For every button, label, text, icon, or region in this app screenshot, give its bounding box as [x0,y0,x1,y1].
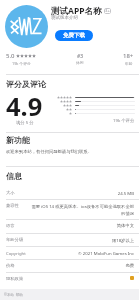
other: Privacy policy [130,276,134,280]
staticText: 19k 个评分 [12,61,31,66]
staticText: 19k 个评分 [113,117,135,123]
staticText: 测试版本介绍 [51,15,78,21]
staticText: 简体中文 [30,223,134,228]
staticText: 评分及评论 [6,79,46,89]
staticText: 24.5 MB [30,190,134,196]
staticText: 欢迎来到本站，有任何问题都请与我们联系。 [6,149,92,154]
staticText: 新功能 [6,135,30,145]
staticText: Copyright [6,250,30,256]
staticText: 年龄 [125,61,133,66]
button[interactable]: 隐私政策 [0,273,139,285]
staticText: 休闲 [76,60,84,65]
staticText: ©本站 帮助 [4,292,23,297]
staticText: © 2021 MobiFun Games Inc [30,250,134,256]
staticText: 兼容性 [6,203,30,208]
staticText: 隐私政策 [6,276,24,281]
staticText: 大小 [6,190,30,195]
staticText: 免费下载 [63,32,85,39]
staticText: 限18岁以上 [30,237,134,243]
staticText: 5.0 [6,52,15,60]
staticText: 4.9 [6,89,43,124]
button[interactable]: App icon [5,5,48,48]
staticText: 价格 [6,263,30,268]
staticText: 3+ [105,8,110,14]
staticText: 信息 [6,171,22,181]
staticText: 年龄分级 [6,237,30,242]
staticText: 18+ [123,52,134,60]
button[interactable]: 免费下载 [55,30,93,41]
staticText: 需要 iOS 14 或更高版本。ios设备不可能全选取不全部的情况 [30,203,134,216]
staticText: #3 [77,53,84,60]
staticText: 满分 5 分 [16,119,34,125]
staticText: 免费 [30,263,134,268]
staticText: 测试APP名称 [51,5,102,17]
staticText: 语言 [6,223,30,228]
